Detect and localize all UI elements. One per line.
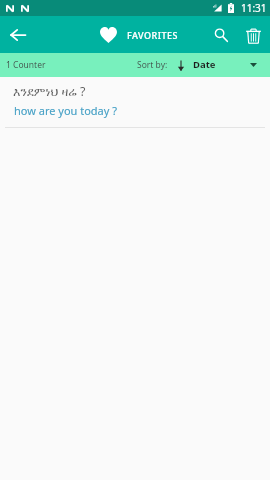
button[interactable]: Search (203, 16, 238, 53)
button[interactable]: እንደምነህ ዛሬ ? (0, 77, 270, 128)
button[interactable]: Sort options (240, 53, 266, 77)
button[interactable]: Sort by: (137, 53, 216, 77)
staticText: FAVORITES (127, 29, 179, 41)
staticText: 11:31 (241, 1, 267, 15)
staticText: how are you today ? (14, 103, 118, 118)
staticText: 1 Counter (6, 59, 46, 71)
staticText: Date (193, 58, 216, 71)
button[interactable]: Delete (236, 16, 270, 53)
button[interactable]: FAVORITES (100, 16, 179, 53)
staticText: እንደምነህ ዛሬ ? (13, 83, 86, 100)
button[interactable]: Back (0, 16, 36, 53)
staticText: Sort by: (137, 59, 168, 71)
